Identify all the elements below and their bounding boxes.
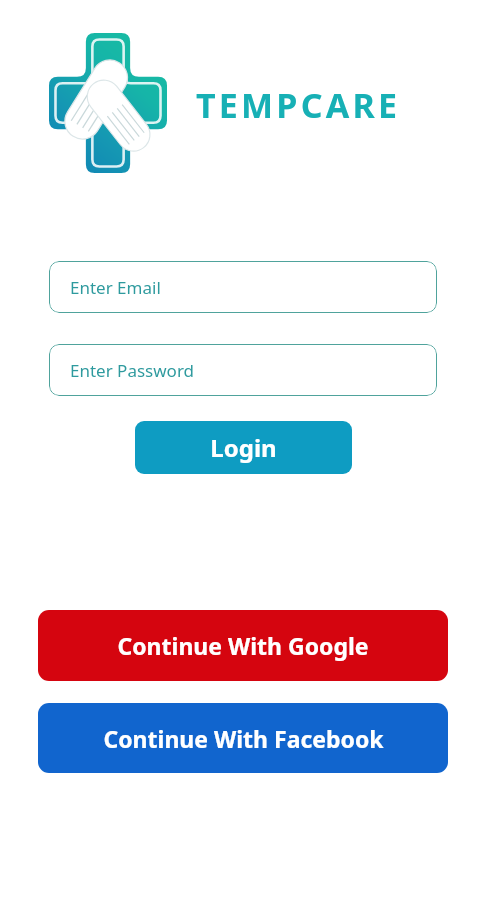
staticText: Continue With Facebook xyxy=(103,723,384,754)
button[interactable]: Continue With Google xyxy=(38,610,448,681)
staticText: Enter Email xyxy=(70,276,161,299)
staticText: Continue With Google xyxy=(117,630,369,661)
button[interactable]: Enter Password xyxy=(49,344,437,396)
staticText: Enter Password xyxy=(70,359,195,382)
staticText: Login xyxy=(210,431,277,464)
other: TempCare logo xyxy=(49,33,167,173)
staticText: TEMPCARE xyxy=(196,82,401,128)
button[interactable]: Login xyxy=(135,421,352,474)
button[interactable]: Enter Email xyxy=(49,261,437,313)
button[interactable]: Continue With Facebook xyxy=(38,703,448,773)
